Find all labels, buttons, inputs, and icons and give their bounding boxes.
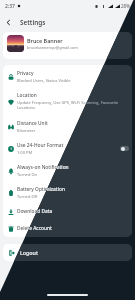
button[interactable]: Privacy <box>3 65 132 87</box>
staticText: 2:37 <box>5 3 15 10</box>
staticText: 28% <box>121 3 130 9</box>
staticText: Use 24-Hour Format <box>17 142 64 149</box>
staticText: Turned Off <box>17 194 38 199</box>
staticText: Logout <box>20 249 38 256</box>
button[interactable]: Delete Account <box>3 220 132 237</box>
button[interactable]: Always-on Notification <box>3 159 132 181</box>
staticText: 2:37 <box>5 3 15 10</box>
staticText: brucebannerxyz@gmail.com <box>27 45 78 50</box>
button[interactable]: Download Data <box>3 203 132 220</box>
button[interactable]: Privacy <box>3 65 132 87</box>
staticText: Location <box>17 92 37 99</box>
staticText: Settings <box>20 18 46 27</box>
button[interactable]: Distance Unit <box>3 115 132 137</box>
staticText: Distance Unit <box>17 120 48 127</box>
staticText: Privacy <box>17 70 34 77</box>
staticText: Delete Account <box>17 225 52 232</box>
button[interactable]: Toggle <box>120 146 129 151</box>
staticText: Download Data <box>17 208 53 215</box>
staticText: Always-on Notification <box>17 164 69 171</box>
button[interactable]: Bruce Banner <box>3 32 132 59</box>
staticText: Kilometer <box>17 128 36 133</box>
button[interactable]: Use 24-Hour Format <box>3 137 132 159</box>
button[interactable]: Battery Optimization <box>3 181 132 203</box>
staticText: Blocked Users, Status Visible <box>17 78 71 83</box>
button[interactable]: Logout <box>3 244 132 261</box>
staticText: Battery Optimization <box>17 186 65 193</box>
staticText: Bruce Banner <box>27 37 63 44</box>
staticText: Location <box>17 92 37 99</box>
staticText: Use 24-Hour Format <box>17 142 64 149</box>
staticText: Delete Account <box>17 225 52 232</box>
staticText: Turned Off <box>17 194 38 199</box>
button[interactable]: Download Data <box>3 203 132 220</box>
button[interactable]: Always-on Notification <box>3 159 132 181</box>
staticText: brucebannerxyz@gmail.com <box>27 45 78 50</box>
button[interactable]: Toggle <box>120 146 129 151</box>
staticText: Turned On <box>17 172 37 177</box>
button[interactable]: Location <box>3 87 132 115</box>
button[interactable]: Use 24-Hour Format <box>3 137 132 159</box>
button[interactable]: Location <box>3 87 132 115</box>
button[interactable]: Battery Optimization <box>3 181 132 203</box>
staticText: Always-on Notification <box>17 164 69 171</box>
staticText: Logout <box>20 249 38 256</box>
staticText: Bruce Banner <box>27 37 63 44</box>
staticText: 1:00 PM <box>17 150 33 155</box>
staticText: Battery Optimization <box>17 186 65 193</box>
button[interactable]: Back <box>0 14 16 30</box>
button[interactable]: Distance Unit <box>3 115 132 137</box>
staticText: Turned On <box>17 172 37 177</box>
staticText: Update Frequency, Use GPS, Wi-Fi Scannin… <box>17 100 129 110</box>
staticText: Download Data <box>17 208 53 215</box>
staticText: Privacy <box>17 70 34 77</box>
button[interactable]: Back <box>0 14 16 30</box>
staticText: Kilometer <box>17 128 36 133</box>
staticText: Update Frequency, Use GPS, Wi-Fi Scannin… <box>17 100 129 110</box>
staticText: 1:00 PM <box>17 150 33 155</box>
staticText: 28% <box>121 3 130 9</box>
button[interactable]: Delete Account <box>3 220 132 237</box>
staticText: Settings <box>20 18 46 27</box>
button[interactable]: Logout <box>3 244 132 261</box>
staticText: Blocked Users, Status Visible <box>17 78 71 83</box>
button[interactable]: Bruce Banner <box>3 32 132 59</box>
staticText: Distance Unit <box>17 120 48 127</box>
